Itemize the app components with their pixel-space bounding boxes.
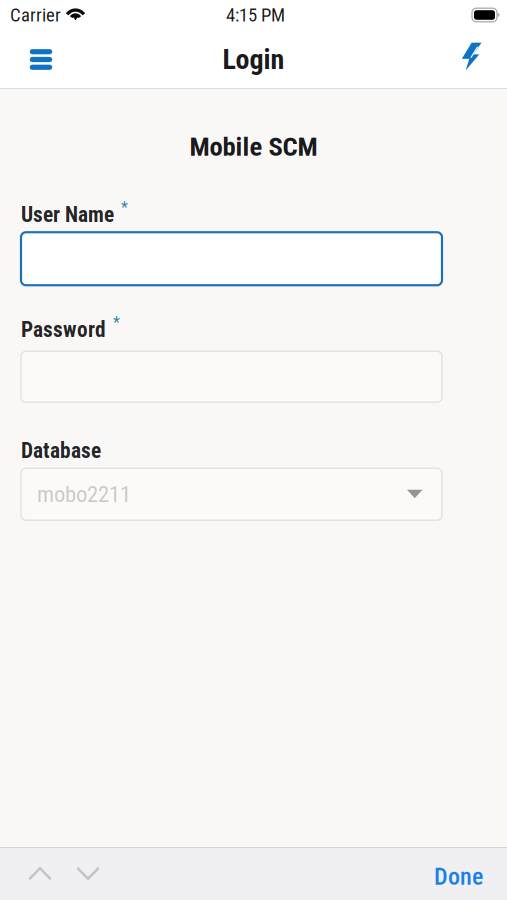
staticText: Database (21, 438, 101, 463)
staticText: Password (21, 317, 106, 342)
staticText: Mobile SCM (189, 131, 317, 162)
button[interactable]: Done (422, 847, 495, 900)
staticText: mobo2211 (37, 481, 131, 508)
staticText: Done (434, 862, 483, 890)
staticText: * (121, 198, 128, 217)
staticText: * (113, 313, 120, 332)
button[interactable]: Quick action (436, 30, 507, 89)
button[interactable]: Next field (64, 847, 112, 900)
staticText: User Name (21, 202, 114, 227)
staticText: Carrier (10, 4, 61, 26)
button[interactable]: Previous field (16, 847, 64, 900)
staticText: Login (222, 43, 284, 76)
staticText: 4:15 PM (226, 4, 285, 26)
button[interactable]: Menu (0, 30, 82, 89)
